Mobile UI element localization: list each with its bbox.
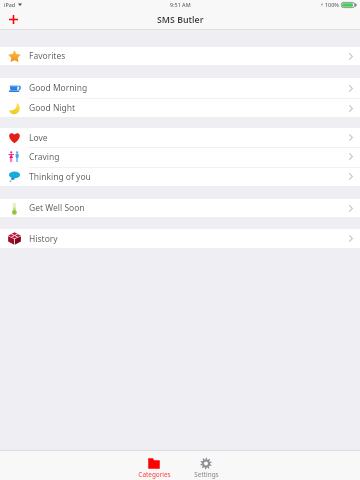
button[interactable]: Love [0, 128, 360, 147]
button[interactable]: Favorites [0, 47, 360, 65]
staticText: Categories [138, 470, 171, 479]
staticText: SMS Butler [157, 14, 204, 26]
staticText: Favorites [29, 50, 66, 62]
button[interactable]: History [0, 229, 360, 248]
button[interactable]: Get Well Soon [0, 199, 360, 217]
staticText: iPad [4, 1, 16, 8]
button[interactable]: Craving [0, 147, 360, 166]
button[interactable]: Categories [128, 451, 180, 480]
staticText: Good Night [29, 102, 76, 114]
staticText: Love [29, 132, 48, 144]
staticText: Craving [29, 151, 60, 163]
button[interactable]: Good Night [0, 98, 360, 118]
staticText: Good Morning [29, 82, 88, 94]
staticText: 9:51 AM [170, 1, 191, 8]
staticText: Get Well Soon [29, 202, 85, 214]
staticText: History [29, 233, 58, 245]
button[interactable]: Good Morning [0, 78, 360, 98]
button[interactable]: Add new message [0, 9, 27, 30]
staticText: Settings [194, 470, 219, 479]
button[interactable]: Thinking of you [0, 167, 360, 186]
staticText: 100% [325, 1, 339, 8]
button[interactable]: Settings [180, 451, 232, 480]
staticText: Thinking of you [29, 171, 91, 183]
